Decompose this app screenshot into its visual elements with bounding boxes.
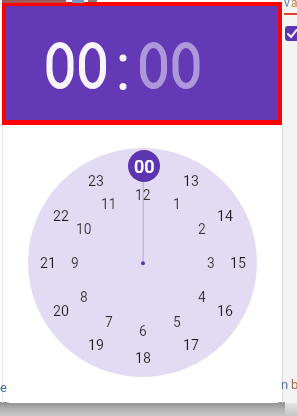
staticText: e [0, 380, 7, 395]
button[interactable]: 00 [128, 150, 160, 182]
staticText: 23 [88, 173, 104, 190]
button[interactable]: 16 [211, 302, 239, 320]
button[interactable]: 19 [82, 336, 110, 354]
button[interactable]: 21 [34, 254, 62, 272]
button[interactable]: 20 [47, 302, 75, 320]
button[interactable]: 12 [129, 186, 157, 204]
staticText: 17 [183, 337, 199, 354]
staticText: 10 [76, 221, 92, 237]
button[interactable]: 2 [188, 220, 216, 238]
staticText: 5 [173, 314, 181, 330]
staticText: 15 [230, 255, 246, 272]
staticText: 20 [53, 303, 69, 320]
staticText: 14 [217, 208, 233, 225]
button[interactable]: 8 [70, 288, 98, 306]
staticText: 00 [134, 156, 155, 177]
button[interactable] [285, 26, 297, 41]
staticText: 11 [101, 196, 117, 212]
button[interactable]: 11 [95, 195, 123, 213]
button[interactable]: 9 [61, 254, 89, 272]
staticText: a [291, 0, 297, 10]
staticText: b [291, 377, 297, 392]
staticText: 19 [88, 337, 104, 354]
staticText: 6 [139, 323, 147, 339]
staticText: n [281, 377, 289, 392]
button[interactable]: 15 [224, 254, 252, 272]
staticText: 9 [71, 255, 79, 271]
button[interactable]: 7 [95, 313, 123, 331]
button[interactable]: 4 [188, 288, 216, 306]
staticText: v [284, 0, 290, 10]
staticText: 13 [183, 173, 199, 190]
button[interactable]: 23 [82, 172, 110, 190]
button[interactable]: 6 [129, 322, 157, 340]
button[interactable]: 18 [129, 349, 157, 367]
button[interactable]: 17 [177, 336, 205, 354]
staticText: 2 [198, 221, 206, 237]
staticText: 21 [40, 255, 56, 272]
button[interactable]: 14 [211, 207, 239, 225]
staticText: 4 [198, 289, 206, 305]
staticText: 16 [217, 303, 233, 320]
staticText: 3 [207, 255, 215, 271]
staticText: 18 [135, 350, 151, 367]
button[interactable]: 10 [70, 220, 98, 238]
staticText: 8 [80, 289, 88, 305]
button[interactable]: 22 [47, 207, 75, 225]
button[interactable]: 5 [163, 313, 191, 331]
staticText: 12 [135, 187, 151, 203]
button[interactable]: 3 [197, 254, 225, 272]
button[interactable]: 1 [163, 195, 191, 213]
staticText: 1 [173, 196, 181, 212]
staticText: 22 [53, 208, 69, 225]
staticText: 7 [105, 314, 113, 330]
button[interactable] [6, 6, 278, 120]
button[interactable]: 13 [177, 172, 205, 190]
